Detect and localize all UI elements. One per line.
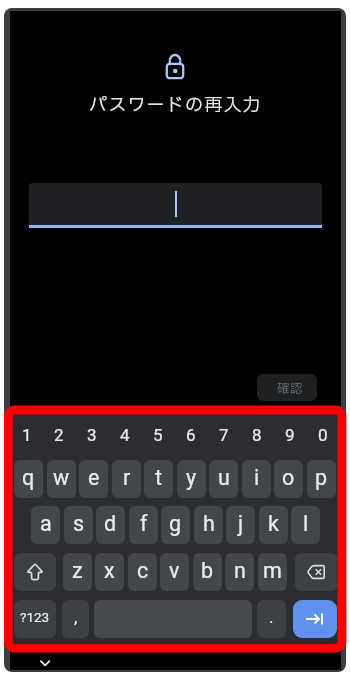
staticText: 8 (252, 425, 262, 445)
staticText: f (140, 511, 148, 536)
button[interactable]: 2 (43, 424, 75, 445)
staticText: x (104, 558, 115, 583)
button[interactable]: g (161, 506, 190, 544)
staticText: 0 (318, 425, 328, 445)
button[interactable]: d (96, 506, 125, 544)
button[interactable]: 確認 (257, 374, 317, 401)
staticText: n (234, 558, 246, 583)
staticText: c (137, 558, 149, 583)
button[interactable]: . (257, 600, 286, 638)
staticText: i (254, 465, 260, 490)
button[interactable]: 7 (207, 424, 240, 445)
button[interactable]: ?123 (14, 600, 56, 638)
staticText: u (218, 465, 230, 490)
button[interactable]: 5 (141, 424, 174, 445)
button[interactable]: k (259, 506, 288, 544)
button[interactable]: i (242, 460, 271, 498)
button[interactable]: z (63, 553, 92, 591)
staticText: p (315, 465, 328, 490)
button[interactable]: o (274, 460, 303, 498)
button[interactable]: b (193, 553, 222, 591)
staticText: 4 (120, 425, 130, 445)
button[interactable]: c (128, 553, 157, 591)
staticText: b (201, 558, 214, 583)
button[interactable]: m (258, 553, 287, 591)
button[interactable]: 0 (306, 424, 339, 445)
staticText: 確認 (277, 380, 303, 399)
staticText: t (155, 465, 163, 490)
staticText: ?123 (20, 609, 50, 625)
staticText: 7 (219, 425, 229, 445)
staticText: q (22, 465, 35, 490)
staticText: e (88, 465, 100, 490)
staticText: o (282, 465, 295, 490)
staticText: d (104, 511, 117, 536)
button[interactable]: s (64, 506, 93, 544)
button[interactable]: x (95, 553, 124, 591)
button[interactable]: w (47, 460, 76, 498)
button[interactable]: j (226, 506, 255, 544)
staticText: l (303, 511, 309, 536)
button[interactable]: t (144, 460, 173, 498)
staticText: y (186, 465, 197, 490)
staticText: j (238, 511, 244, 536)
staticText: z (72, 558, 83, 583)
staticText: k (268, 511, 279, 536)
staticText: 1 (22, 425, 32, 445)
button[interactable] (295, 553, 337, 591)
button[interactable]: q (14, 460, 43, 498)
button[interactable]: u (209, 460, 238, 498)
staticText: s (73, 511, 85, 536)
button[interactable]: y (177, 460, 206, 498)
button[interactable]: 4 (108, 424, 141, 445)
staticText: g (169, 511, 182, 536)
staticText: パスワードの再入力 (89, 92, 262, 119)
button[interactable]: l (291, 506, 320, 544)
staticText: w (53, 465, 70, 490)
button[interactable]: p (307, 460, 336, 498)
staticText: 2 (54, 425, 64, 445)
button[interactable]: 1 (11, 424, 43, 445)
button[interactable] (29, 183, 322, 225)
staticText: 6 (186, 425, 196, 445)
button[interactable]: , (62, 600, 89, 638)
button[interactable]: 6 (174, 424, 207, 445)
button[interactable]: a (31, 506, 60, 544)
button[interactable] (293, 600, 337, 638)
button[interactable]: v (160, 553, 189, 591)
staticText: , (74, 607, 78, 627)
staticText: r (123, 465, 131, 490)
button[interactable]: h (194, 506, 223, 544)
button[interactable]: f (129, 506, 158, 544)
button[interactable]: e (79, 460, 108, 498)
button[interactable]: 3 (75, 424, 108, 445)
button[interactable]: r (112, 460, 141, 498)
staticText: 3 (87, 425, 97, 445)
button[interactable]: 8 (240, 424, 273, 445)
staticText: 9 (285, 425, 295, 445)
staticText: a (40, 511, 52, 536)
staticText: . (269, 607, 274, 627)
button[interactable] (14, 553, 56, 591)
button[interactable]: 9 (273, 424, 306, 445)
button[interactable]: n (225, 553, 254, 591)
staticText: h (203, 511, 215, 536)
staticText: 5 (153, 425, 163, 445)
staticText: m (263, 558, 282, 583)
staticText: v (169, 558, 180, 583)
